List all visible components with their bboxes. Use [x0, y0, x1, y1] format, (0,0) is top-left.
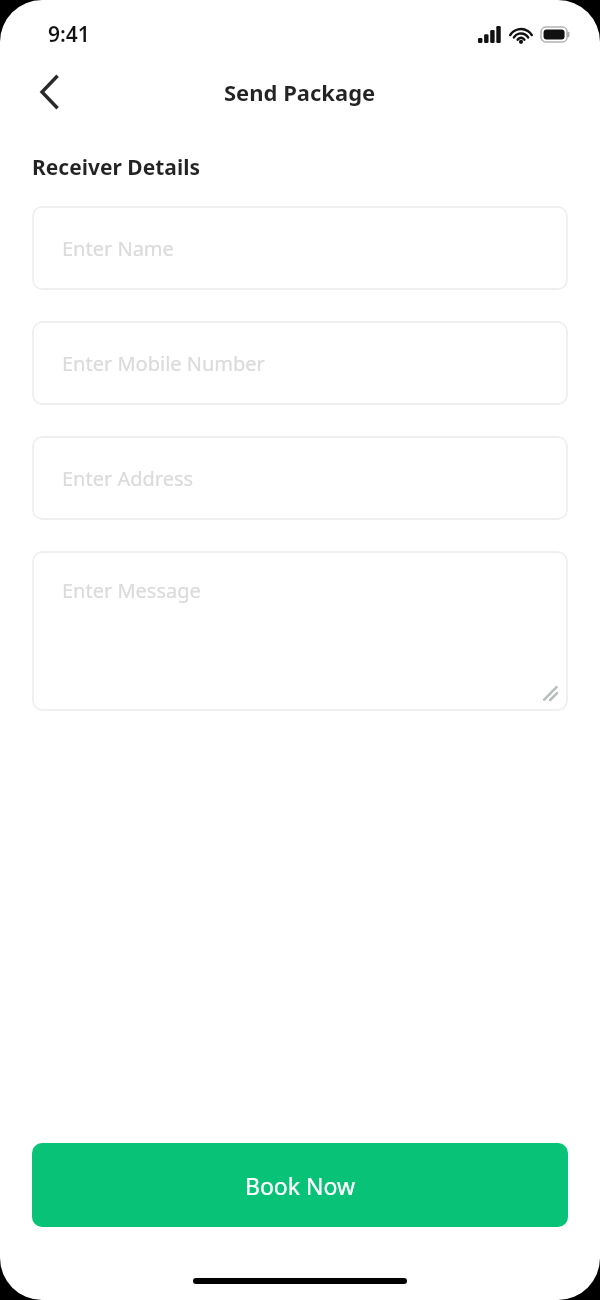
staticText: Enter Mobile Number [62, 350, 265, 377]
staticText: Send Package [224, 77, 376, 107]
button[interactable]: Enter Mobile Number [32, 321, 568, 405]
staticText: 9:41 [48, 20, 90, 49]
staticText: Book Now [245, 1170, 356, 1201]
button[interactable]: Enter Message [32, 551, 568, 711]
staticText: Enter Message [62, 577, 201, 604]
button[interactable]: Book Now [32, 1143, 568, 1227]
staticText: Receiver Details [32, 153, 201, 182]
staticText: Enter Address [62, 465, 194, 492]
button[interactable]: Enter Name [32, 206, 568, 290]
button[interactable]: Back [24, 66, 76, 118]
staticText: Enter Name [62, 235, 174, 262]
button[interactable]: Enter Address [32, 436, 568, 520]
